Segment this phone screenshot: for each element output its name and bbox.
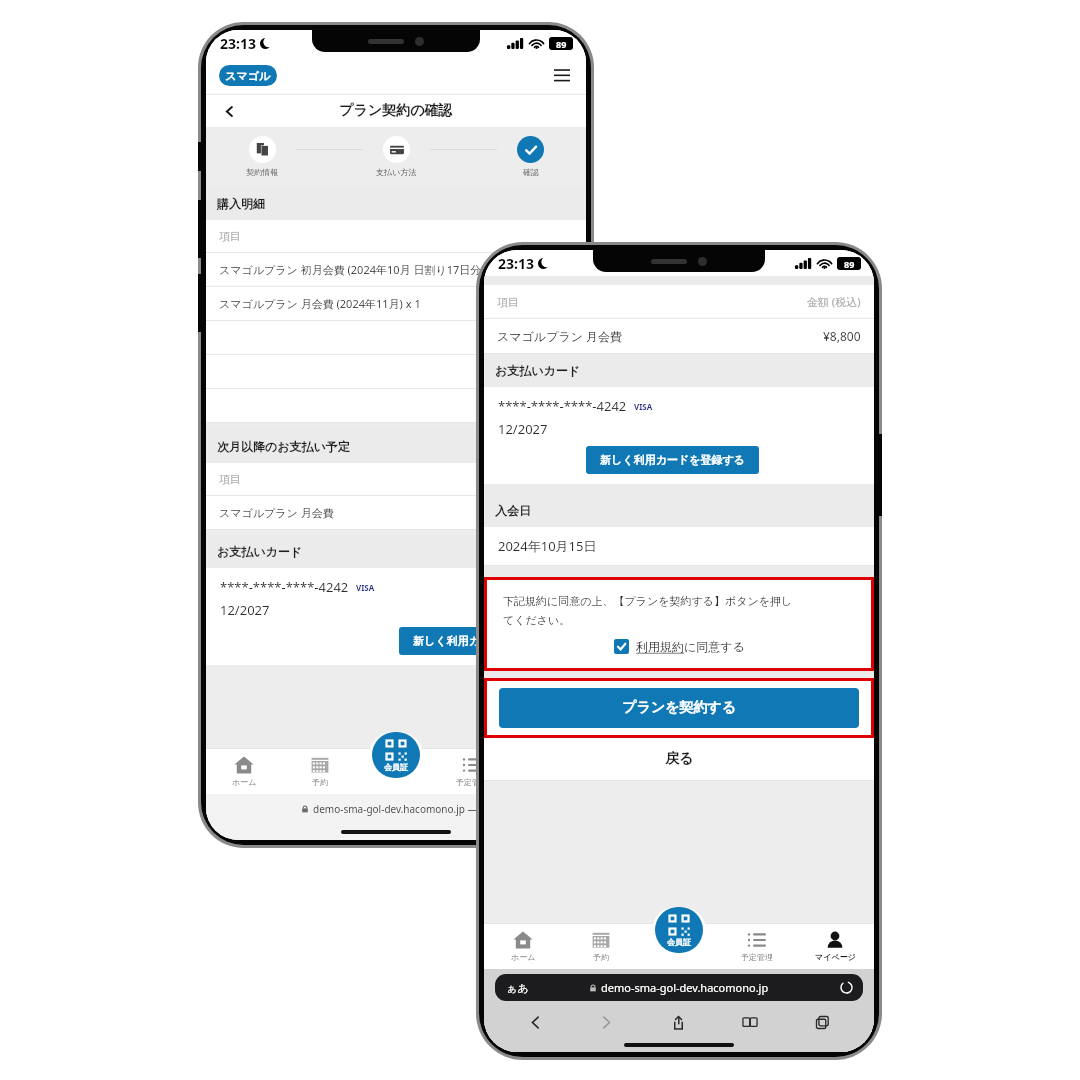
staticText: プランを契約する [622,699,736,717]
staticText [219,330,551,345]
staticText: 予約 [593,952,609,962]
staticText: 89 [844,258,855,270]
staticText: 項目 [219,472,573,486]
staticText: 契約情報 [246,167,278,177]
staticText: 新しく利用カードを登録する [600,453,745,467]
button[interactable]: マイページ [796,923,874,969]
staticText: マイページ [815,952,856,962]
staticText: ****-****-****-4242 [498,397,627,415]
staticText: ホーム [511,952,536,962]
staticText: demo-sma-gol-dev.hacomono.jp — プ [313,802,491,816]
button[interactable]: ホーム [484,923,562,969]
button[interactable] [517,136,544,163]
button[interactable]: 予定管理 [718,923,796,969]
staticText: 2024年10月15日 [498,537,597,555]
staticText [219,364,523,379]
staticText: マイページ [528,777,569,787]
staticText: 項目 [219,229,573,243]
button[interactable]: Share [642,1006,714,1038]
button[interactable]: Forward [571,1006,642,1038]
staticText: てください。 [503,613,571,627]
staticText: スマゴルプラン 月会費 (2024年11月) x 1 [219,296,573,311]
staticText: 23:13 [220,34,256,53]
staticText: 12/2027 [220,601,270,619]
button[interactable]: ぁあ [495,974,863,1001]
staticText: 支払い方法 [376,167,417,177]
staticText: 12/2027 [498,420,548,438]
button[interactable]: Back [500,1006,571,1038]
staticText: VISA [356,582,375,592]
staticText: 確認 [523,167,539,177]
button[interactable]: プランを契約する [499,688,859,728]
staticText: demo-sma-gol-dev.hacomono.jp [601,980,769,995]
button[interactable]: スマゴル [219,65,277,86]
staticText: お支払いカード [217,544,303,559]
staticText: スマゴルプラン 月会費 [219,505,573,520]
staticText: (10% 内消費税 [501,398,573,413]
staticText: ぁあ [506,981,529,995]
staticText: 入会日 [495,503,531,518]
staticText: 合計 [551,331,573,345]
button[interactable]: 予約 [282,748,358,794]
staticText: 予定管理 [456,777,488,787]
button[interactable]: Tabs [786,1006,858,1038]
button[interactable]: ホーム [206,748,282,794]
staticText: 購入明細 [217,196,265,211]
staticText: 予定管理 [741,952,773,962]
button[interactable]: マイページ [510,748,586,794]
button[interactable]: Back [219,101,239,121]
button[interactable]: 利用規約 [614,639,745,654]
button[interactable]: Menu [552,65,572,85]
staticText: スマゴル [225,69,271,83]
button[interactable]: 新しく利用カードを登録する [399,627,572,655]
staticText: 金額 (税込) [807,294,861,309]
staticText: ホーム [232,777,257,787]
button[interactable]: 予約 [562,923,640,969]
staticText: 会員証 [667,937,691,947]
staticText: VISA [634,401,653,411]
button[interactable]: Bookmarks [714,1006,786,1038]
staticText: 次月以降のお支払い予定 [217,439,350,454]
staticText: スマゴルプラン 月会費 [497,328,823,344]
staticText: お支払いカード [495,363,581,378]
staticText: 会員証 [384,762,408,772]
button[interactable]: 予定管理 [434,748,510,794]
staticText: 新しく利用カードを登録する [413,634,558,648]
button[interactable] [383,136,410,163]
staticText: プラン契約の確認 [339,102,453,120]
staticText [219,398,501,413]
staticText: (10% 対象 [523,364,573,379]
staticText: 予約 [312,777,328,787]
staticText: 利用規約 [636,639,684,654]
staticText: ¥8,800 [823,328,861,344]
button[interactable] [249,136,276,163]
staticText: に同意する [684,639,745,654]
staticText: 89 [556,38,567,50]
staticText: 23:13 [498,254,534,273]
staticText: ****-****-****-4242 [220,578,349,596]
staticText: 戻る [665,750,694,768]
staticText: 下記規約に同意の上、【プランを契約する】ボタンを押し [503,594,793,608]
button[interactable]: 会員証 [655,907,703,953]
staticText: スマゴルプラン 初月会費 (2024年10月 日割り17日分) x 1 [219,262,573,277]
button[interactable]: Reload [840,981,853,994]
button[interactable]: 戻る [484,738,874,780]
button[interactable]: 会員証 [372,732,420,778]
staticText: 項目 [497,295,807,309]
button[interactable]: 新しく利用カードを登録する [586,446,759,474]
